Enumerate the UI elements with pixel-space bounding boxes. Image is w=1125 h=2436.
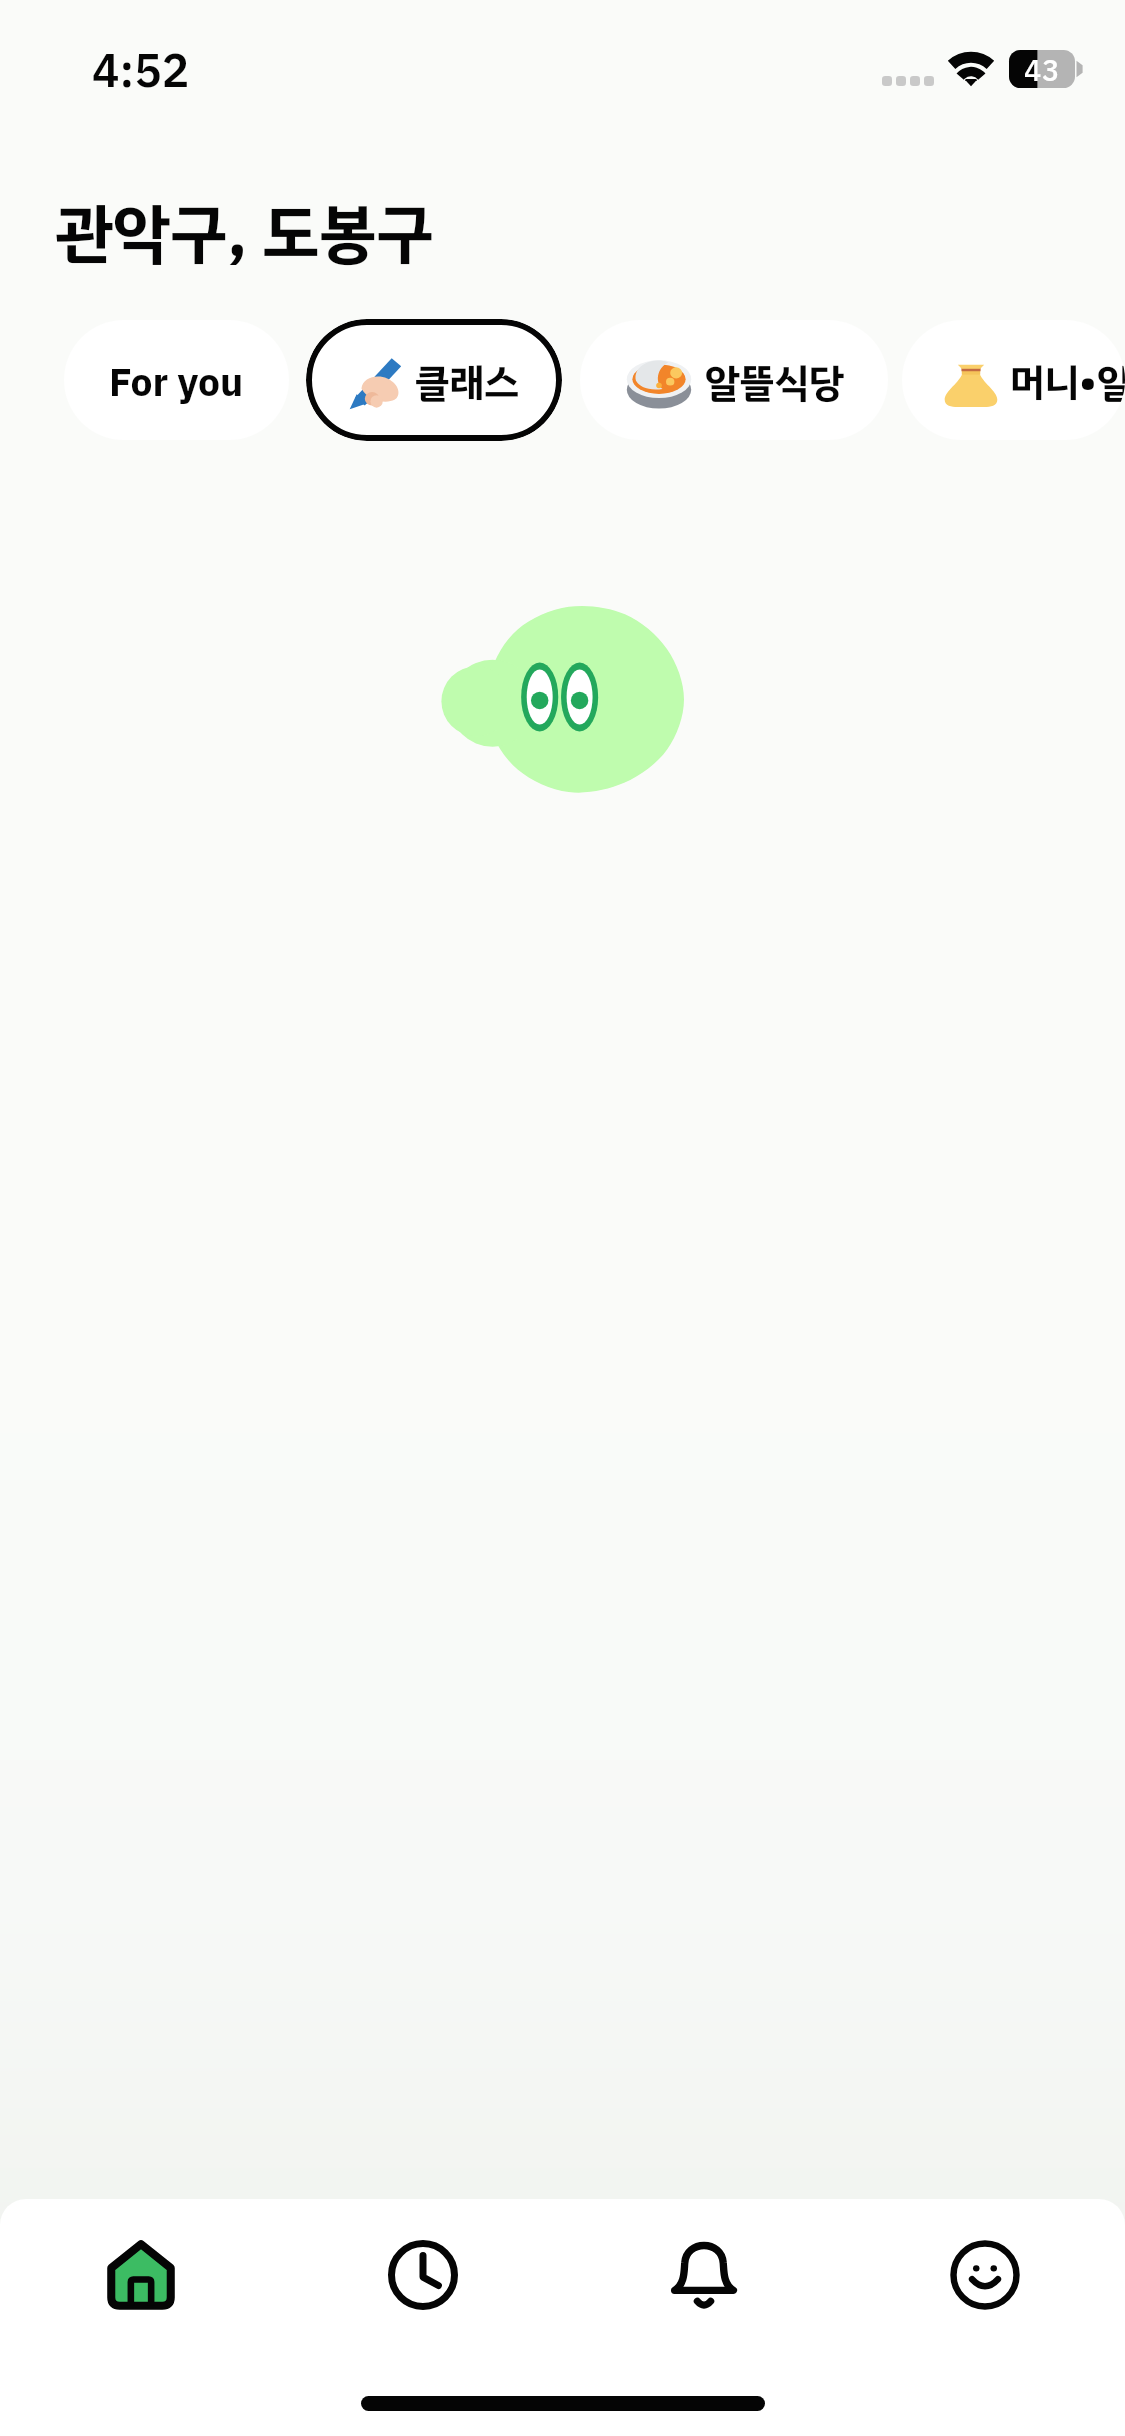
button[interactable]: Recent — [282, 2199, 563, 2349]
staticText: 클래스 — [415, 354, 520, 413]
button[interactable]: Profile — [844, 2199, 1125, 2349]
button[interactable]: 알뜰식당 — [580, 320, 888, 440]
staticText: For you — [109, 354, 244, 413]
staticText: 관악구, 도봉구 — [56, 186, 434, 282]
staticText: 43 — [1024, 50, 1060, 88]
button[interactable]: Home — [0, 2199, 282, 2349]
button[interactable]: 클래스 — [306, 319, 562, 441]
button[interactable]: For you — [64, 320, 289, 440]
staticText: 머니•일 — [1010, 354, 1125, 413]
staticText: 알뜰식당 — [705, 354, 845, 413]
button[interactable]: Notifications — [563, 2199, 844, 2349]
staticText: 4:52 — [92, 37, 190, 106]
button[interactable]: 머니•일 — [902, 320, 1125, 440]
